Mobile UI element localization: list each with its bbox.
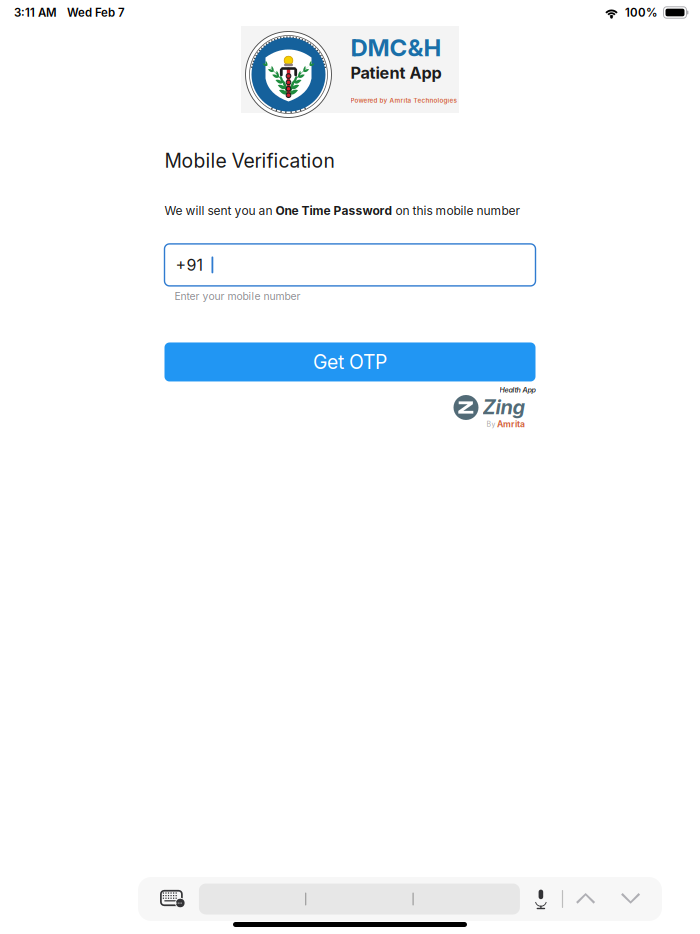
staticText: 100%: [625, 6, 658, 19]
button[interactable]: Previous field: [563, 880, 608, 918]
staticText: Health App: [499, 386, 535, 394]
staticText: We will sent you an: [164, 203, 275, 218]
button[interactable]: Next field: [608, 880, 653, 918]
staticText: One Time Password: [275, 203, 392, 218]
staticText: Amrita: [497, 419, 525, 429]
staticText: DMC&H: [350, 33, 441, 62]
staticText: on this mobile number: [392, 203, 520, 218]
staticText: 3:11 AM: [14, 6, 57, 19]
button[interactable]: Get OTP: [164, 342, 535, 381]
staticText: Powered by Amrita Technologies: [350, 97, 456, 104]
staticText: Patient App: [350, 63, 441, 83]
staticText: By: [486, 420, 495, 428]
button[interactable]: Dictate: [520, 880, 562, 918]
staticText: Enter your mobile number: [174, 290, 300, 302]
staticText: Zing: [482, 395, 525, 419]
staticText: Mobile Verification: [164, 149, 334, 172]
staticText: Wed Feb 7: [67, 6, 125, 19]
staticText: Get OTP: [313, 350, 387, 374]
staticText: +91: [175, 255, 203, 275]
button[interactable]: Show keyboard: [147, 880, 199, 918]
button[interactable]: Predictions: [199, 883, 520, 914]
